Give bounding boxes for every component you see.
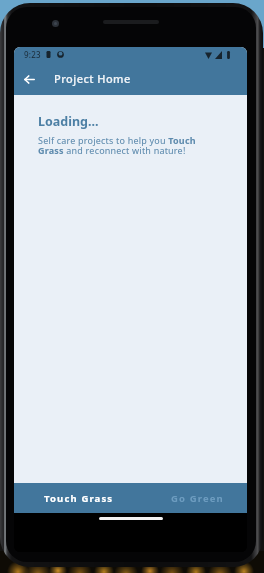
staticText: Loading... (38, 113, 99, 130)
staticText: Project Home (54, 71, 131, 86)
staticText: Go Green (171, 492, 224, 505)
button[interactable]: Touch Grass (14, 483, 130, 513)
staticText: Touch Grass (44, 492, 114, 505)
staticText: Self care projects to help you Touch Gra… (38, 134, 211, 157)
button[interactable]: Go Green (130, 483, 247, 513)
button[interactable]: Back (16, 66, 42, 92)
staticText: 9:23 (24, 49, 41, 60)
